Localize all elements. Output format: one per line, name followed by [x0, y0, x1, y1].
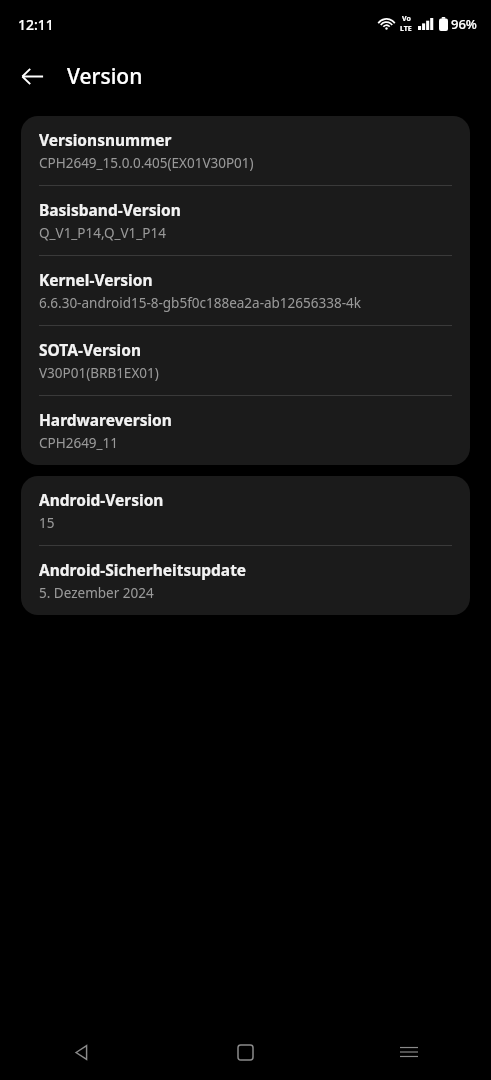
button[interactable]: Basisband-Version	[21, 186, 470, 255]
button[interactable]: Versionsnummer	[21, 116, 470, 185]
staticText: Android-Sicherheitsupdate	[39, 559, 247, 580]
button[interactable]: Android-Version	[21, 476, 470, 545]
button[interactable]: SOTA-Version	[21, 326, 470, 395]
staticText: Hardwareversion	[39, 409, 172, 430]
button[interactable]: Back	[8, 52, 56, 100]
staticText: Android-Version	[39, 489, 164, 510]
staticText: Q_V1_P14,Q_V1_P14	[39, 224, 166, 242]
staticText: Vo	[402, 14, 411, 24]
staticText: CPH2649_11	[39, 434, 119, 452]
staticText: 12:11	[18, 15, 54, 34]
button[interactable]: Recent apps	[327, 1024, 491, 1080]
staticText: V30P01(BRB1EX01)	[39, 364, 159, 382]
staticText: SOTA-Version	[39, 339, 142, 360]
button[interactable]: Home	[163, 1024, 327, 1080]
button[interactable]: Kernel-Version	[21, 256, 470, 325]
staticText: Kernel-Version	[39, 269, 153, 290]
button[interactable]: Back	[0, 1024, 163, 1080]
staticText: 5. Dezember 2024	[39, 584, 154, 602]
staticText: 6.6.30-android15-8-gb5f0c188ea2a-ab12656…	[39, 294, 361, 312]
button[interactable]: Hardwareversion	[21, 396, 470, 465]
staticText: LTE	[400, 24, 412, 34]
staticText: Versionsnummer	[39, 129, 172, 150]
staticText: Version	[67, 62, 143, 91]
staticText: CPH2649_15.0.0.405(EX01V30P01)	[39, 154, 254, 172]
staticText: 96%	[451, 15, 477, 33]
staticText: 15	[39, 514, 55, 532]
staticText: Basisband-Version	[39, 199, 181, 220]
button[interactable]: Android-Sicherheitsupdate	[21, 546, 470, 615]
